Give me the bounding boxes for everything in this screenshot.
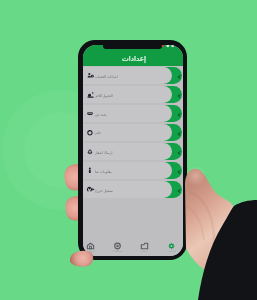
button[interactable]: التحويل للاخر: [83, 86, 183, 105]
button[interactable]: Home: [83, 236, 103, 256]
button[interactable]: ارسال اشعار: [83, 143, 183, 162]
staticText: ارسال اشعار: [95, 150, 169, 154]
button[interactable]: خاتم: [83, 124, 183, 143]
button[interactable]: بحث عن: [83, 105, 183, 124]
staticText: التحويل للاخر: [95, 93, 169, 97]
staticText: بحث عن: [95, 112, 169, 116]
button[interactable]: تسجيل خروج: [83, 181, 183, 200]
staticText: تسجيل خروج: [95, 188, 169, 192]
button[interactable]: اعدادات الحساب: [83, 67, 183, 86]
staticText: ملفات: [141, 250, 148, 253]
button[interactable]: Explore: [105, 236, 130, 256]
staticText: اعدادات: [167, 250, 176, 253]
staticText: الرئيسية: [86, 250, 95, 253]
staticText: خاتم: [95, 131, 169, 135]
staticText: إعدادات: [122, 54, 147, 62]
button[interactable]: Files: [132, 236, 157, 256]
button[interactable]: Settings: [159, 236, 183, 256]
staticText: اعدادات الحساب: [95, 74, 169, 78]
button[interactable]: معلومات عنا: [83, 162, 183, 181]
staticText: معلومات عنا: [95, 169, 169, 173]
staticText: استكشاف: [112, 250, 123, 253]
